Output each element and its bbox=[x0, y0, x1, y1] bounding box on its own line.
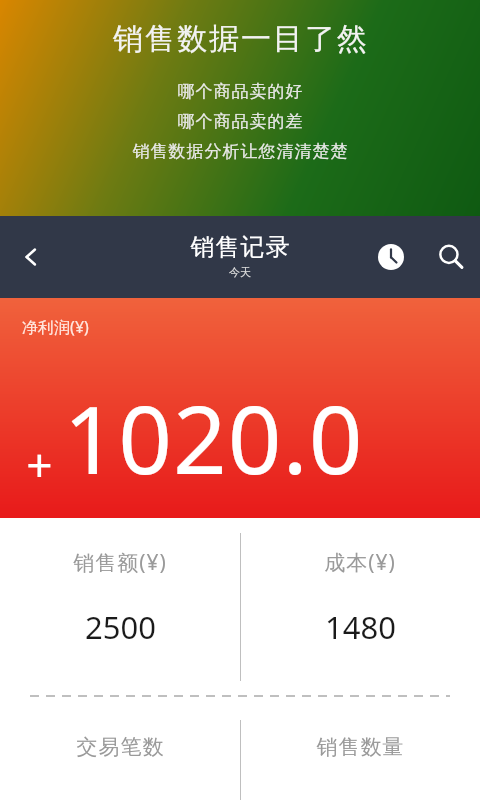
staticText: 今天 bbox=[229, 265, 251, 279]
staticText: 哪个商品卖的好 bbox=[177, 81, 303, 102]
staticText: 哪个商品卖的差 bbox=[177, 111, 303, 132]
button[interactable]: 销售数量 bbox=[240, 697, 480, 800]
staticText: 销售数据分析让您清清楚楚 bbox=[132, 141, 348, 162]
staticText: 2500 bbox=[85, 606, 156, 648]
staticText: 成本(¥) bbox=[324, 548, 396, 577]
button[interactable]: 销售额(¥) bbox=[0, 518, 240, 695]
staticText: 交易笔数 bbox=[76, 734, 164, 760]
staticText: 销售额(¥) bbox=[73, 548, 167, 577]
button[interactable]: 成本(¥) bbox=[240, 518, 480, 695]
staticText: + bbox=[26, 433, 53, 496]
staticText: 1020.0 bbox=[63, 374, 364, 502]
staticText: 销售数据一目了然 bbox=[112, 20, 368, 58]
button[interactable]: Back bbox=[0, 216, 62, 298]
button[interactable]: History bbox=[360, 216, 422, 298]
button[interactable]: Search bbox=[422, 216, 480, 298]
staticText: 销售记录 bbox=[190, 232, 290, 262]
staticText: 销售数量 bbox=[316, 734, 404, 760]
staticText: 净利润(¥) bbox=[22, 316, 89, 338]
staticText: 1480 bbox=[325, 606, 396, 648]
button[interactable]: 交易笔数 bbox=[0, 697, 240, 800]
